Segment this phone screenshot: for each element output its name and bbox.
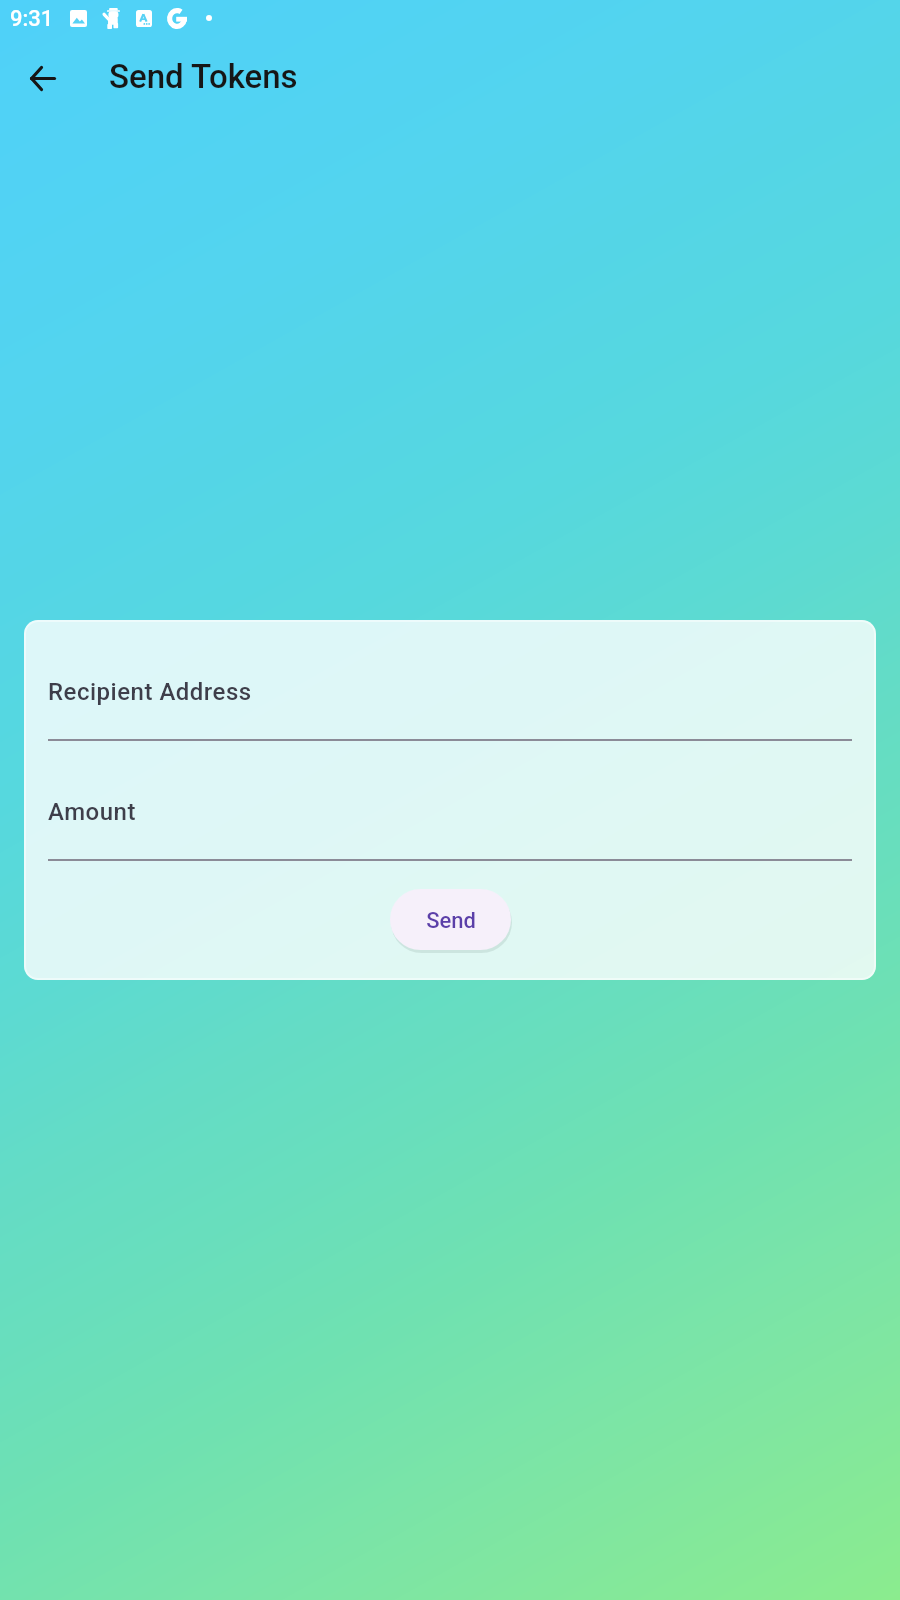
staticText: Amount xyxy=(48,798,136,826)
button[interactable]: Back xyxy=(12,48,72,108)
staticText: Send xyxy=(426,908,476,934)
staticText: Recipient Address xyxy=(48,678,252,706)
button[interactable]: Send xyxy=(390,889,511,950)
staticText: 9:31 xyxy=(10,6,54,32)
button[interactable]: Amount xyxy=(48,798,852,873)
button[interactable]: Recipient Address xyxy=(48,678,852,753)
staticText: Send Tokens xyxy=(109,57,298,96)
